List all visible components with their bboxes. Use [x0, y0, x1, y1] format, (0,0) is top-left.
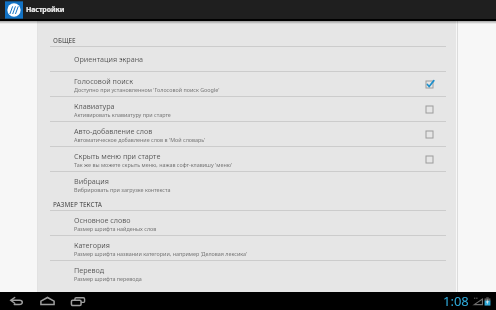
button[interactable]: Toggle	[422, 152, 436, 166]
button[interactable]: Голосовой поиск	[0, 72, 496, 96]
button[interactable]: Back	[6, 292, 26, 310]
button[interactable]: Вибрация	[0, 172, 496, 196]
button[interactable]: Категория	[0, 236, 496, 260]
button[interactable]: Авто-добавление слов	[0, 122, 496, 146]
staticText: Доступно при установленном 'Голосовой по…	[74, 86, 220, 93]
staticText: Основное слово	[74, 215, 131, 225]
staticText: Скрыть меню при старте	[74, 151, 161, 161]
button[interactable]: Клавиатура	[0, 97, 496, 121]
button[interactable]: Toggle	[422, 127, 436, 141]
button[interactable]: Recent apps	[68, 292, 88, 310]
staticText: Категория	[74, 240, 110, 250]
staticText: РАЗМЕР ТЕКСТА	[53, 200, 103, 209]
button[interactable]: Перевод	[0, 261, 496, 285]
staticText: 1:08	[443, 292, 469, 310]
staticText: Вибрация	[74, 176, 109, 186]
staticText: Клавиатура	[74, 101, 115, 111]
staticText: Размер шрифта найденых слов	[74, 225, 157, 232]
button[interactable]: Скрыть меню при старте	[0, 147, 496, 171]
staticText: Перевод	[74, 265, 105, 275]
staticText: Авто-добавление слов	[74, 126, 153, 136]
staticText: Активировать клавиатуру при старте	[74, 111, 171, 118]
staticText: Автоматическое добавление слов в 'Мой сл…	[74, 136, 206, 143]
button[interactable]: Toggle	[422, 77, 436, 91]
button[interactable]: Home	[37, 292, 57, 310]
button[interactable]: Toggle	[422, 102, 436, 116]
staticText: Вибрировать при загрузке контекста	[74, 186, 171, 193]
staticText: Настройки	[26, 5, 65, 15]
staticText: Так же вы можете скрыть меню, нажав софт…	[74, 161, 233, 168]
button[interactable]: App icon	[5, 1, 23, 19]
staticText: ОБЩЕЕ	[53, 36, 76, 45]
staticText: Размер шрифта названии категории, наприм…	[74, 250, 248, 257]
staticText: Размер шрифта перевода	[74, 275, 142, 282]
staticText: Голосовой поиск	[74, 76, 133, 86]
staticText: Ориентация экрана	[74, 54, 144, 64]
button[interactable]: Основное слово	[0, 211, 496, 235]
button[interactable]: Ориентация экрана	[0, 47, 496, 71]
